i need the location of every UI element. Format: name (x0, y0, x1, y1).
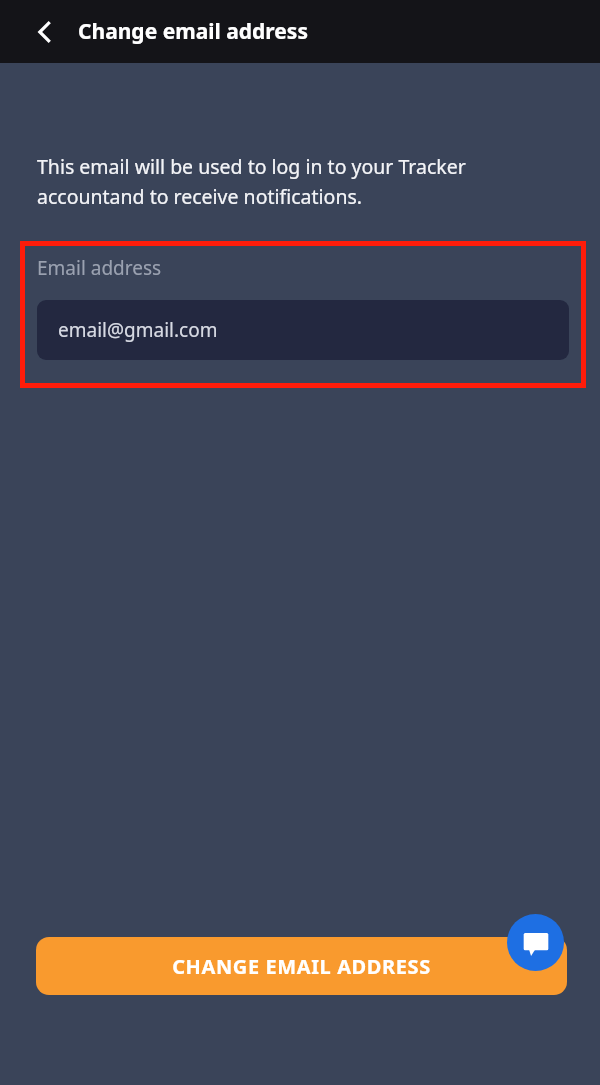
staticText: Email address (37, 255, 162, 281)
staticText: This email will be used to log in to you… (37, 153, 540, 209)
button[interactable]: Back (18, 5, 72, 59)
button[interactable]: Chat support (507, 914, 564, 971)
staticText: email@gmail.com (58, 317, 218, 343)
staticText: Change email address (78, 17, 308, 46)
button[interactable]: email@gmail.com (37, 300, 569, 360)
button[interactable]: CHANGE EMAIL ADDRESS (36, 937, 567, 995)
staticText: CHANGE EMAIL ADDRESS (172, 953, 431, 980)
